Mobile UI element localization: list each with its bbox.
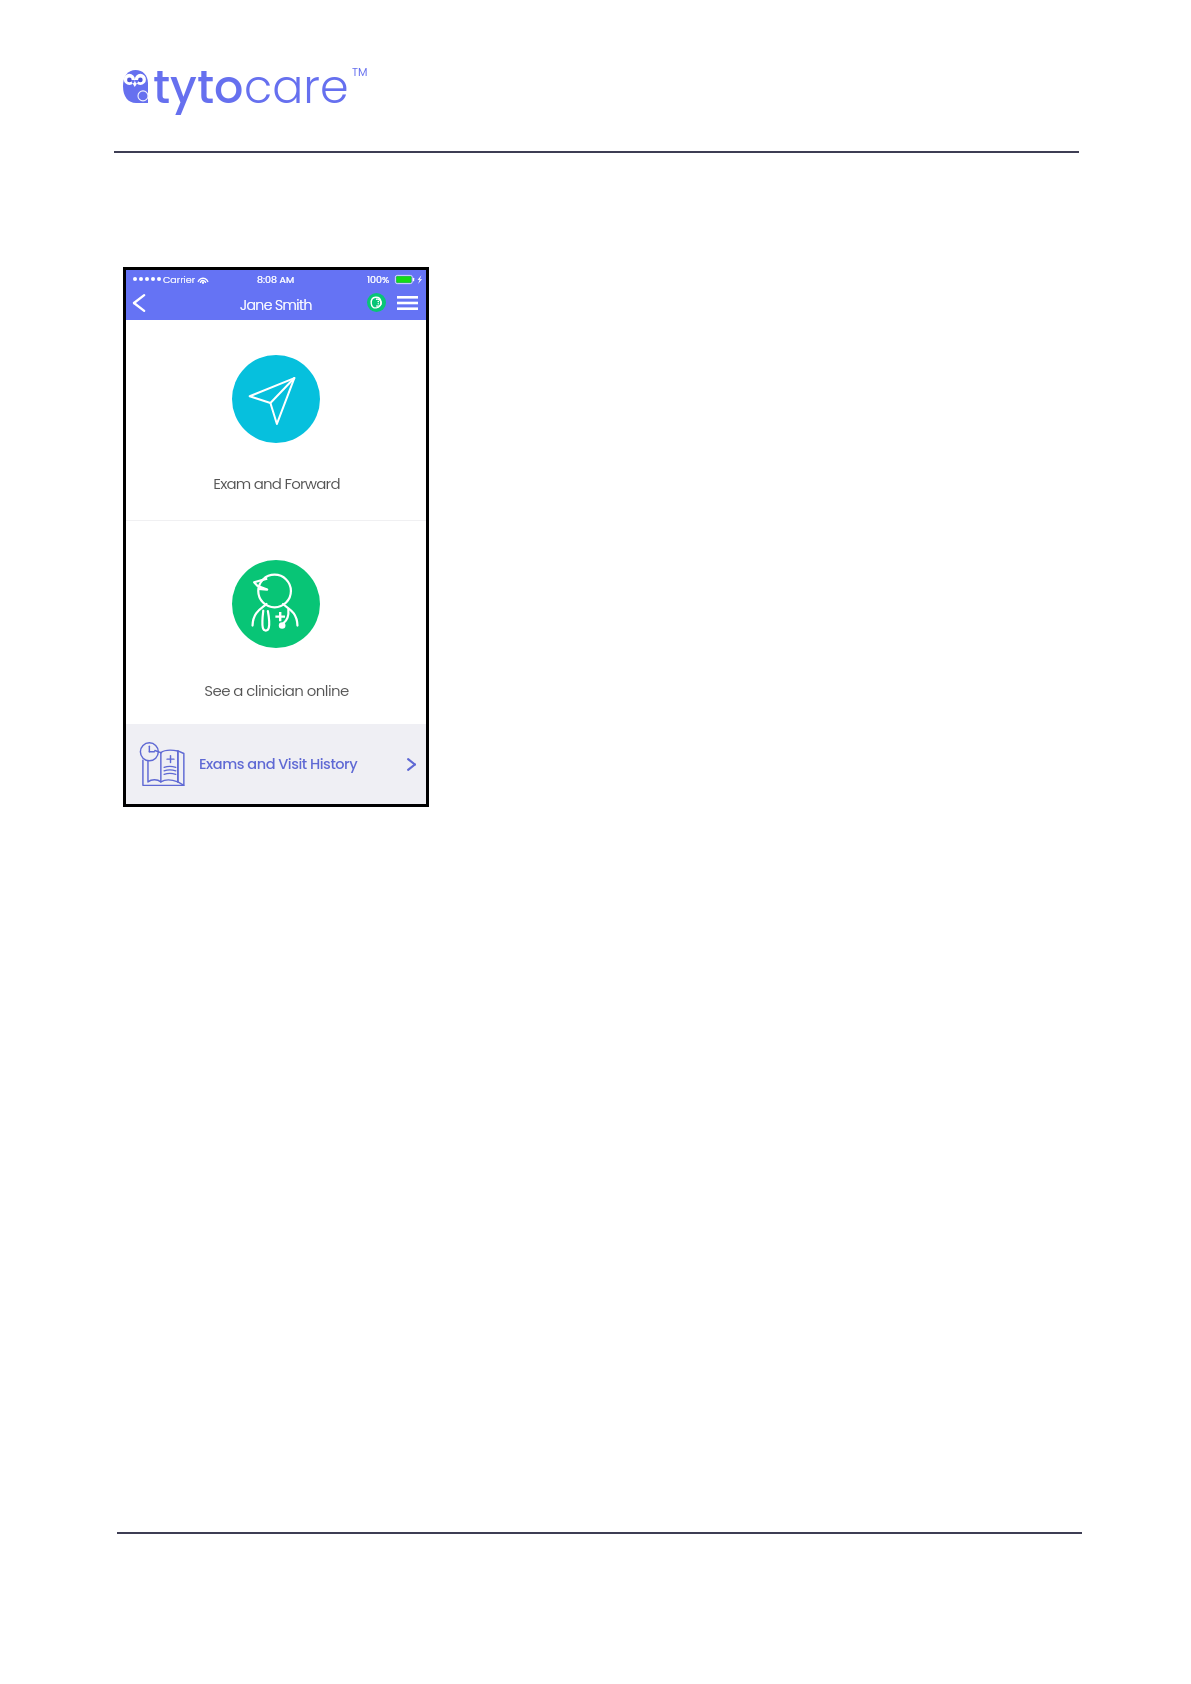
button[interactable]: Exams and Visit History — [126, 724, 426, 804]
staticText: 100% — [367, 273, 390, 286]
staticText: TM — [352, 64, 368, 79]
button[interactable]: Menu — [392, 292, 422, 314]
button[interactable]: Back — [129, 293, 149, 313]
staticText: Exam and Forward — [213, 473, 340, 494]
button[interactable]: See a clinician online — [126, 525, 426, 725]
staticText: See a clinician online — [204, 680, 349, 701]
staticText: Carrier — [163, 273, 196, 286]
staticText: care — [244, 55, 349, 119]
button[interactable]: Device — [367, 293, 386, 312]
staticText: 8:08 AM — [257, 273, 295, 286]
staticText: Exams and Visit History — [199, 754, 358, 774]
staticText: Jane Smith — [240, 295, 312, 315]
staticText: tyto — [153, 55, 244, 119]
button[interactable]: Exam and Forward — [126, 320, 426, 520]
